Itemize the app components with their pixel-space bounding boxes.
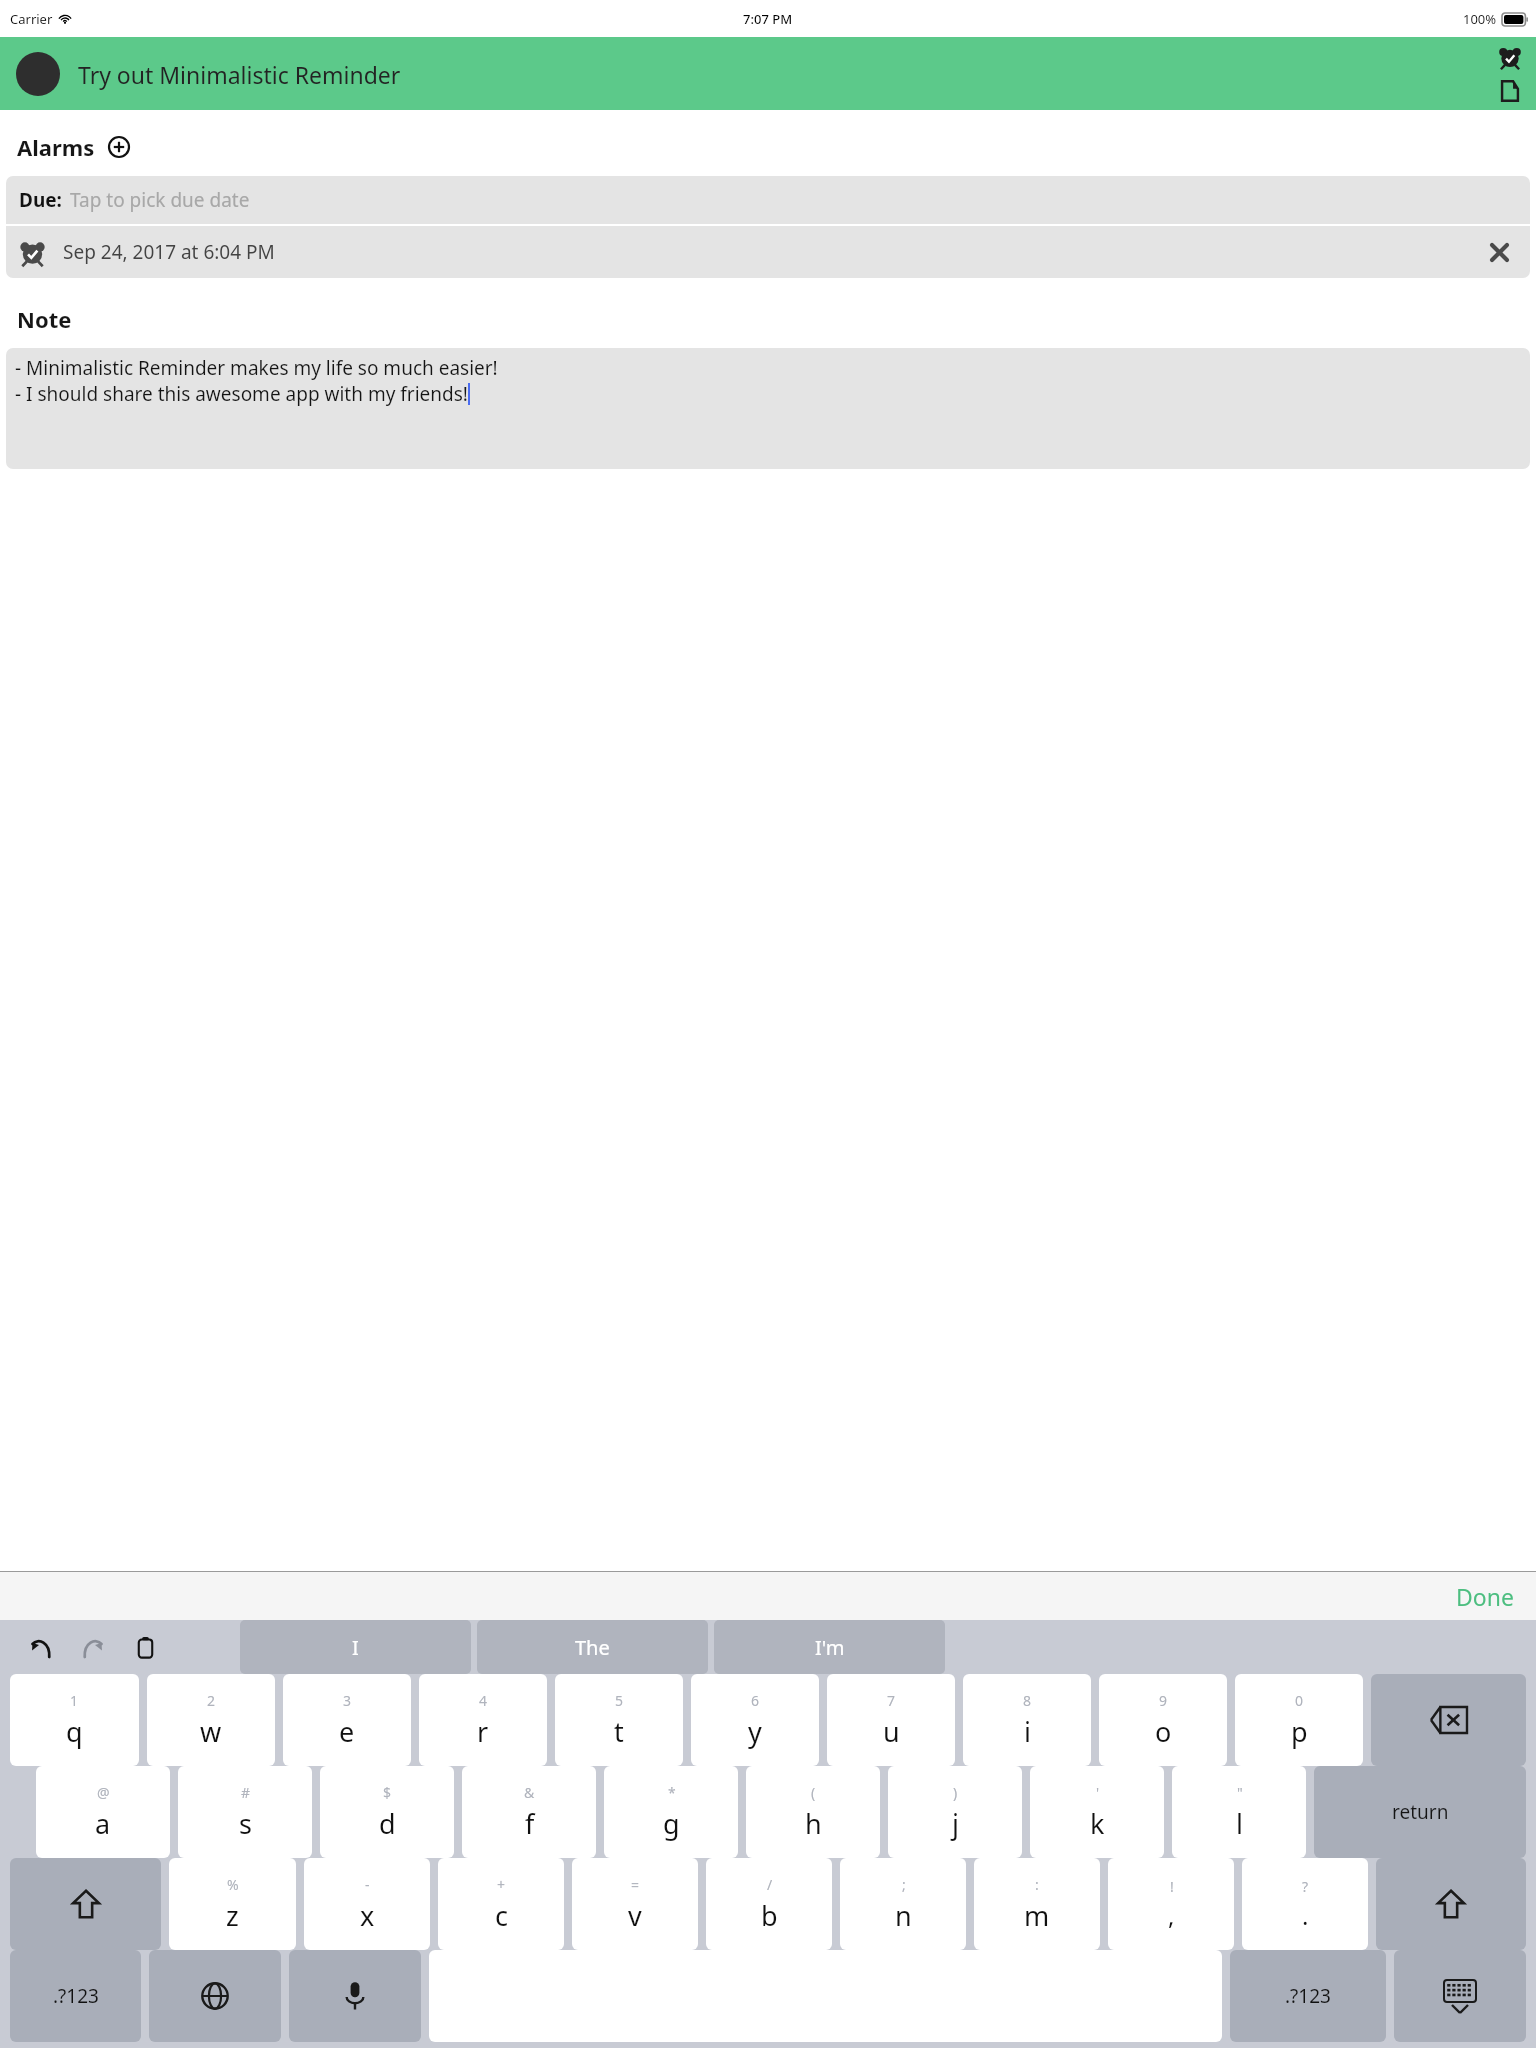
staticText: : [1035, 1875, 1039, 1894]
button[interactable]: Shift [10, 1858, 161, 1950]
staticText: = [631, 1875, 640, 1894]
button[interactable]: Change keyboard [149, 1950, 281, 2042]
staticText: + [497, 1875, 506, 1894]
button[interactable]: Undo [22, 1629, 58, 1665]
button[interactable]: Add alarm [104, 132, 134, 162]
staticText: Try out Minimalistic Reminder [78, 59, 401, 90]
staticText: ; [902, 1875, 906, 1894]
staticText: g [663, 1805, 680, 1842]
staticText: return [1392, 1799, 1449, 1825]
staticText: j [952, 1805, 959, 1842]
staticText: 5 [615, 1691, 624, 1710]
staticText: v [628, 1897, 642, 1934]
staticText: u [883, 1713, 900, 1750]
staticText: 4 [479, 1691, 488, 1710]
button[interactable]: # [178, 1766, 312, 1858]
staticText: e [339, 1713, 355, 1750]
staticText: m [1024, 1897, 1050, 1934]
staticText: Tap to pick due date [70, 187, 250, 213]
staticText: y [748, 1713, 762, 1750]
button[interactable]: Alarms [1494, 41, 1526, 73]
staticText: Due: [19, 187, 62, 213]
staticText: . [1302, 1899, 1309, 1932]
button[interactable]: ' [1030, 1766, 1164, 1858]
button[interactable]: @ [36, 1766, 170, 1858]
staticText: z [226, 1897, 239, 1934]
button[interactable]: Due: [6, 176, 1530, 224]
button[interactable]: % [169, 1858, 296, 1950]
button[interactable]: Toggle complete [16, 52, 60, 96]
button[interactable]: $ [320, 1766, 454, 1858]
staticText: - I should share this awesome app with m… [15, 381, 468, 407]
button[interactable]: : [974, 1858, 1100, 1950]
staticText: 6 [751, 1691, 760, 1710]
button[interactable]: I [240, 1620, 471, 1674]
button[interactable]: / [706, 1858, 832, 1950]
staticText: , [1168, 1899, 1175, 1932]
staticText: Carrier [10, 10, 53, 28]
button[interactable]: 0 [1235, 1674, 1363, 1766]
button[interactable]: ) [888, 1766, 1022, 1858]
button[interactable]: .?123 [1230, 1950, 1386, 2042]
button[interactable]: Dictation [289, 1950, 421, 2042]
button[interactable]: 3 [283, 1674, 411, 1766]
button[interactable]: ! [1108, 1858, 1234, 1950]
staticText: n [895, 1897, 912, 1934]
button[interactable]: 7 [827, 1674, 955, 1766]
staticText: 8 [1023, 1691, 1032, 1710]
staticText: ! [1170, 1877, 1174, 1896]
staticText: 2 [207, 1691, 216, 1710]
button[interactable]: - [304, 1858, 430, 1950]
staticText: / [767, 1875, 773, 1894]
button[interactable]: Paste [127, 1629, 163, 1665]
staticText: 9 [1159, 1691, 1168, 1710]
staticText: i [1024, 1713, 1031, 1750]
button[interactable]: Remove alarm [1482, 235, 1516, 269]
staticText: 1 [70, 1691, 79, 1710]
button[interactable]: I'm [714, 1620, 945, 1674]
button[interactable]: Note [1494, 75, 1526, 107]
button[interactable]: ; [840, 1858, 966, 1950]
staticText: .?123 [1285, 1983, 1331, 2009]
staticText: I [352, 1634, 359, 1661]
staticText: ( [811, 1783, 816, 1802]
button[interactable]: Hide keyboard [1394, 1950, 1526, 2042]
button[interactable]: .?123 [10, 1950, 141, 2042]
staticText: ' [1096, 1783, 1100, 1802]
staticText: ? [1302, 1877, 1309, 1896]
button[interactable]: Backspace [1371, 1674, 1526, 1766]
staticText: p [1291, 1713, 1308, 1750]
button[interactable]: 8 [963, 1674, 1091, 1766]
button[interactable]: The [477, 1620, 708, 1674]
button[interactable]: 4 [419, 1674, 547, 1766]
staticText: ) [953, 1783, 958, 1802]
staticText: - [365, 1875, 370, 1894]
button[interactable]: return [1314, 1766, 1526, 1858]
staticText: % [227, 1875, 239, 1894]
staticText: * [668, 1783, 676, 1802]
staticText: I'm [815, 1634, 845, 1661]
staticText: q [66, 1713, 83, 1750]
button[interactable]: 5 [555, 1674, 683, 1766]
button[interactable]: 6 [691, 1674, 819, 1766]
button[interactable]: = [572, 1858, 698, 1950]
button[interactable]: Shift [1376, 1858, 1526, 1950]
staticText: a [95, 1805, 111, 1842]
button[interactable]: Done [1448, 1577, 1522, 1616]
button[interactable]: ? [1242, 1858, 1368, 1950]
button[interactable]: Sep 24, 2017 at 6:04 PM [6, 226, 1530, 278]
button[interactable]: " [1172, 1766, 1306, 1858]
staticText: - Minimalistic Reminder makes my life so… [15, 355, 498, 381]
button[interactable]: + [438, 1858, 564, 1950]
button[interactable]: 2 [147, 1674, 275, 1766]
button[interactable]: 9 [1099, 1674, 1227, 1766]
button[interactable]: 1 [10, 1674, 139, 1766]
button[interactable]: * [604, 1766, 738, 1858]
button[interactable]: Redo [75, 1629, 111, 1665]
staticText: " [1237, 1783, 1243, 1802]
button[interactable]: & [462, 1766, 596, 1858]
button[interactable]: ( [746, 1766, 880, 1858]
staticText: 7 [887, 1691, 896, 1710]
button[interactable]: - Minimalistic Reminder makes my life so… [6, 348, 1530, 469]
